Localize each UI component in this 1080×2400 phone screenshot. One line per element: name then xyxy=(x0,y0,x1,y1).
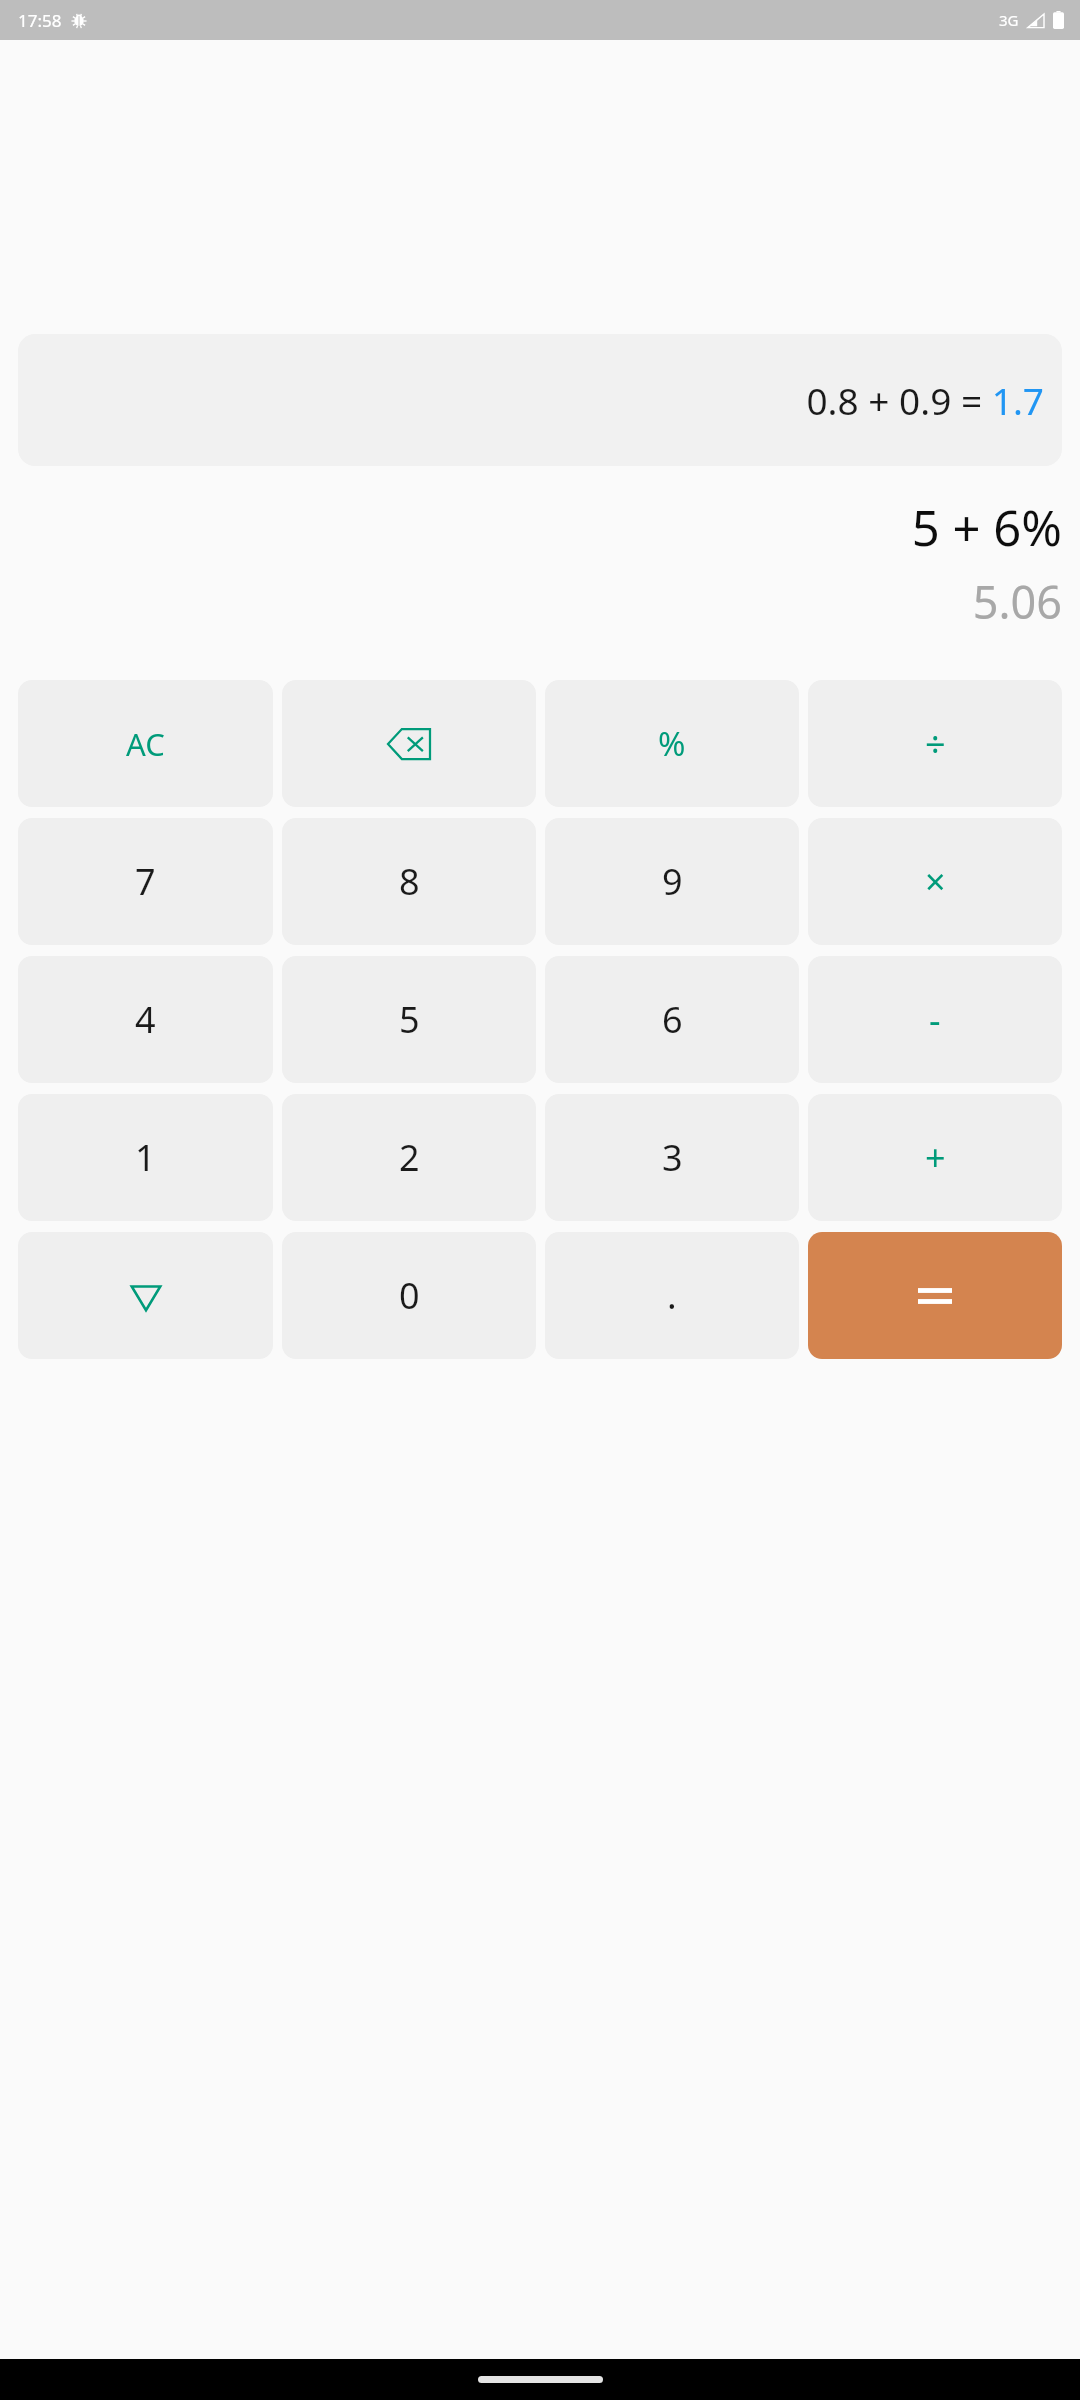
button[interactable]: ÷ xyxy=(808,680,1062,807)
staticText: 2 xyxy=(399,1133,420,1182)
button[interactable]: Backspace xyxy=(282,680,536,807)
staticText: 3G xyxy=(999,10,1019,30)
button[interactable]: 9 xyxy=(545,818,799,945)
staticText: 9 xyxy=(662,857,683,906)
staticText: % xyxy=(658,721,686,766)
staticText: 5.06 xyxy=(972,571,1062,632)
staticText: 17:58 xyxy=(18,9,62,32)
staticText: 3 xyxy=(662,1133,683,1182)
button[interactable]: 4 xyxy=(18,956,273,1083)
button[interactable]: 3 xyxy=(545,1094,799,1221)
button[interactable]: % xyxy=(545,680,799,807)
button[interactable]: - xyxy=(808,956,1062,1083)
staticText: 0.8 + 0.9 = 1.7 xyxy=(806,375,1044,425)
button[interactable]: 5 xyxy=(282,956,536,1083)
staticText: 8 xyxy=(399,857,420,906)
staticText: AC xyxy=(126,723,165,765)
staticText: 5 xyxy=(399,995,420,1044)
button[interactable]: 1 xyxy=(18,1094,273,1221)
staticText: × xyxy=(925,857,946,906)
staticText: 1 xyxy=(135,1133,156,1182)
staticText: 0 xyxy=(399,1271,420,1320)
staticText: + xyxy=(925,1133,946,1182)
button[interactable]: + xyxy=(808,1094,1062,1221)
button[interactable]: 2 xyxy=(282,1094,536,1221)
staticText: 7 xyxy=(135,857,156,906)
button[interactable]: AC xyxy=(18,680,273,807)
staticText: - xyxy=(929,995,941,1044)
button[interactable]: 6 xyxy=(545,956,799,1083)
button[interactable]: . xyxy=(545,1232,799,1359)
staticText: 6 xyxy=(662,995,683,1044)
staticText: 4 xyxy=(135,995,156,1044)
button[interactable]: Equals xyxy=(808,1232,1062,1359)
button[interactable]: 0.8 + 0.9 = 1.7 xyxy=(18,334,1062,466)
button[interactable]: Collapse keypad xyxy=(18,1232,273,1359)
button[interactable]: 8 xyxy=(282,818,536,945)
button[interactable]: 7 xyxy=(18,818,273,945)
staticText: . xyxy=(667,1271,677,1320)
button[interactable]: 0 xyxy=(282,1232,536,1359)
staticText: ÷ xyxy=(925,719,946,768)
staticText: 5 + 6% xyxy=(911,494,1062,561)
button[interactable]: × xyxy=(808,818,1062,945)
